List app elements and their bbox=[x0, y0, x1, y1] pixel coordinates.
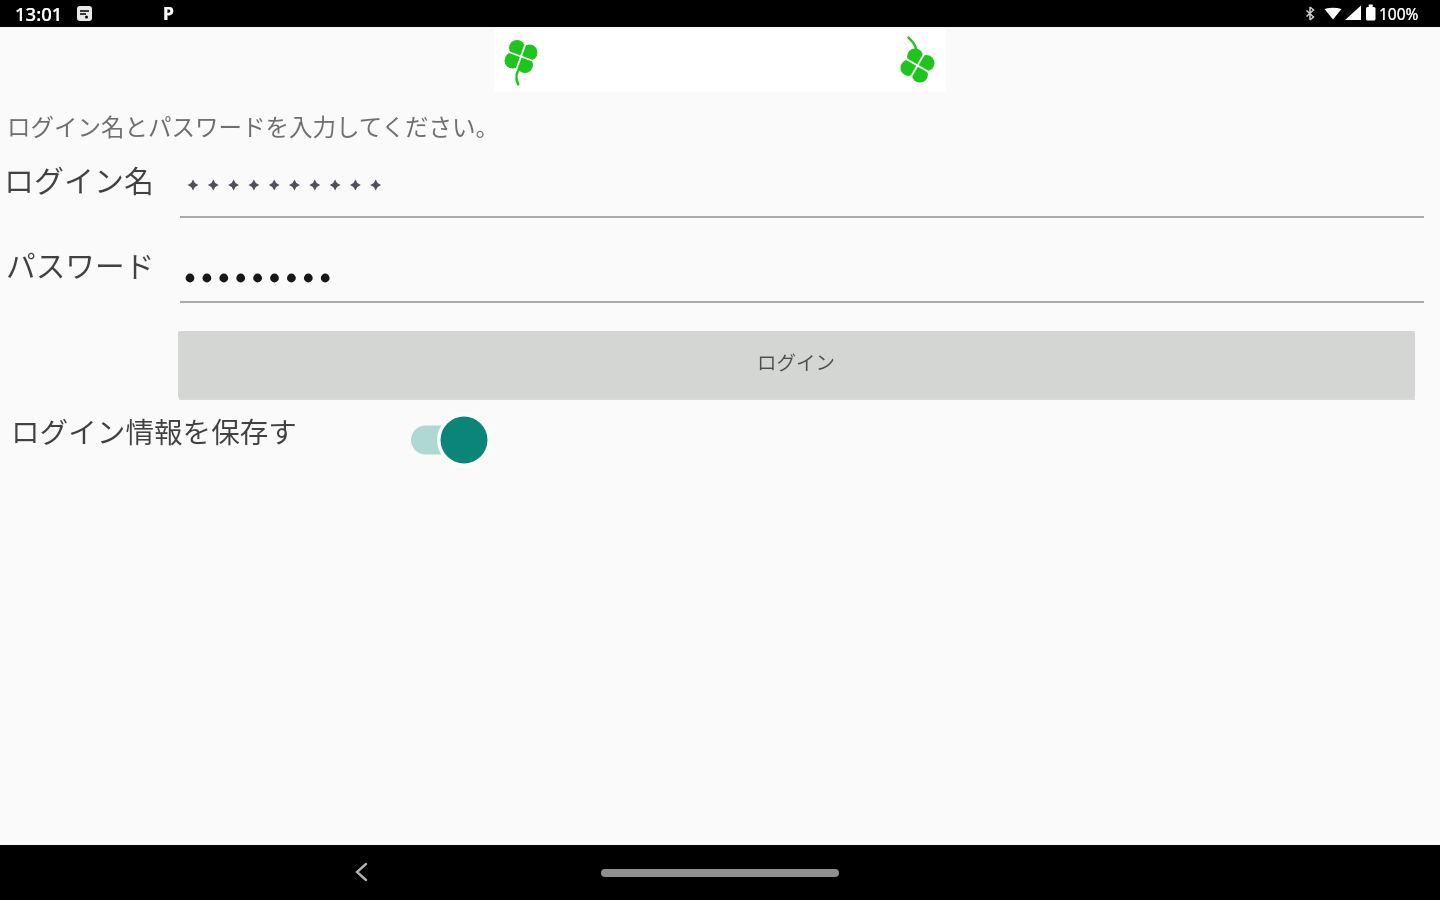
button[interactable] bbox=[601, 869, 839, 877]
staticText: ログイン名 bbox=[4, 157, 154, 200]
button[interactable] bbox=[340, 852, 380, 892]
button[interactable]: ログイン bbox=[178, 331, 1415, 398]
staticText: P bbox=[163, 1, 174, 25]
button[interactable] bbox=[404, 410, 496, 470]
staticText: パスワード bbox=[6, 243, 155, 286]
staticText: 13:01 bbox=[15, 1, 63, 26]
staticText: 100% bbox=[1379, 3, 1419, 24]
staticText: ログイン情報を保存す bbox=[11, 410, 297, 451]
staticText: ログイン bbox=[757, 347, 836, 375]
staticText: ログイン名とパスワードを入力してください。 bbox=[7, 109, 500, 143]
